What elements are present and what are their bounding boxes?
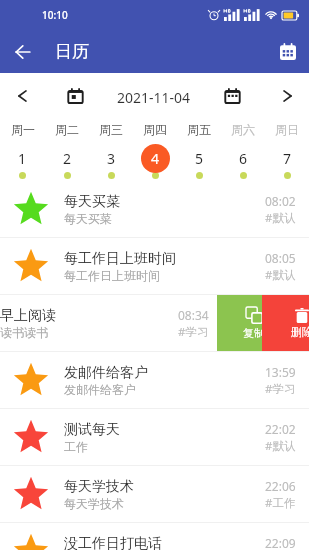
button[interactable]: 2: [53, 144, 82, 173]
staticText: 6: [239, 149, 248, 168]
staticText: 周四: [143, 122, 167, 137]
staticText: 周五: [187, 122, 211, 137]
staticText: 没工作日打电话: [64, 535, 162, 550]
staticText: #学习: [178, 324, 209, 340]
button[interactable]: 复制: [217, 295, 309, 351]
button[interactable]: 发邮件给客户: [0, 352, 309, 409]
staticText: 10:10: [42, 8, 68, 22]
staticText: 3: [107, 149, 116, 168]
staticText: 5: [195, 149, 204, 168]
staticText: 每工作日上班时间: [64, 268, 160, 283]
staticText: 每天学技术: [64, 496, 124, 511]
button[interactable]: 5: [185, 144, 214, 173]
staticText: 每工作日上班时间: [64, 250, 176, 268]
button[interactable]: Next day: [273, 82, 301, 110]
staticText: #默认: [265, 438, 296, 454]
button[interactable]: 每工作日上班时间: [0, 238, 309, 295]
staticText: 复制: [243, 326, 265, 340]
button[interactable]: 7: [273, 144, 302, 173]
button[interactable]: End date: [219, 82, 245, 108]
staticText: 4: [151, 149, 160, 168]
button[interactable]: Previous day: [8, 82, 36, 110]
button[interactable]: 4: [141, 144, 170, 173]
staticText: 发邮件给客户: [64, 382, 136, 397]
staticText: 发邮件给客户: [64, 364, 148, 382]
staticText: 周一: [11, 122, 35, 137]
button[interactable]: 3: [97, 144, 126, 173]
staticText: #学习: [265, 381, 296, 397]
staticText: #默认: [265, 210, 296, 226]
staticText: 22:06: [265, 478, 296, 494]
button[interactable]: 没工作日打电话: [0, 523, 309, 550]
button[interactable]: 测试每天: [0, 409, 309, 466]
button[interactable]: Back: [0, 30, 45, 73]
staticText: 日历: [55, 41, 89, 62]
button[interactable]: 1: [8, 144, 37, 173]
staticText: 08:02: [265, 193, 296, 209]
button[interactable]: 早上阅读: [0, 295, 309, 351]
staticText: #默认: [265, 267, 296, 283]
staticText: 2021-11-04: [117, 88, 191, 107]
staticText: 周六: [231, 122, 255, 137]
staticText: 周三: [99, 122, 123, 137]
staticText: 早上阅读: [0, 307, 56, 325]
staticText: 22:09: [265, 535, 296, 550]
staticText: 每天学技术: [64, 478, 134, 496]
staticText: 08:05: [265, 250, 296, 266]
button[interactable]: 每天学技术: [0, 466, 309, 523]
staticText: 读书读书: [0, 325, 48, 340]
staticText: 1: [18, 149, 27, 168]
button[interactable]: 6: [229, 144, 258, 173]
button[interactable]: 删除: [262, 295, 309, 351]
staticText: 每天买菜: [64, 193, 120, 211]
staticText: #工作: [265, 495, 296, 511]
button[interactable]: 每天买菜: [0, 181, 309, 238]
staticText: 周二: [55, 122, 79, 137]
staticText: 13:59: [265, 364, 296, 380]
staticText: 22:02: [265, 421, 296, 437]
staticText: 删除: [291, 325, 309, 339]
staticText: 测试每天: [64, 421, 120, 439]
staticText: 2: [63, 149, 72, 168]
button[interactable]: Start date: [62, 82, 88, 108]
staticText: 周日: [275, 122, 299, 137]
staticText: 工作: [64, 439, 88, 454]
staticText: 每天买菜: [64, 211, 112, 226]
staticText: 08:34: [178, 307, 209, 323]
staticText: 7: [283, 149, 292, 168]
button[interactable]: Calendar: [267, 30, 309, 73]
